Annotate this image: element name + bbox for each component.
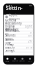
staticText: Library (19, 60, 25, 62)
staticText: Privacy (5, 43, 13, 46)
staticText: Storage (5, 49, 15, 52)
staticText: Notifications (5, 29, 20, 36)
staticText: 9:41 (6, 4, 13, 8)
staticText: 8 (30, 31, 32, 34)
staticText: Battery (5, 46, 14, 49)
staticText: General (5, 19, 16, 22)
staticText: 87% (26, 46, 32, 49)
staticText: Sounds (5, 34, 15, 37)
staticText: On (28, 34, 32, 37)
staticText: Settings (6, 4, 23, 19)
staticText: Accessibility (5, 22, 21, 25)
staticText: More (28, 60, 32, 62)
staticText: Apple Account (9, 13, 20, 20)
staticText: Screen Time (5, 38, 14, 45)
staticText: Search (12, 60, 18, 62)
staticText: Light (25, 25, 32, 28)
staticText: ••• (29, 4, 32, 8)
staticText: Wallpaper (5, 28, 18, 31)
staticText: 2h (28, 40, 32, 43)
staticText: Focus (5, 37, 12, 40)
staticText: Home (5, 60, 9, 62)
staticText: Display (5, 25, 14, 28)
